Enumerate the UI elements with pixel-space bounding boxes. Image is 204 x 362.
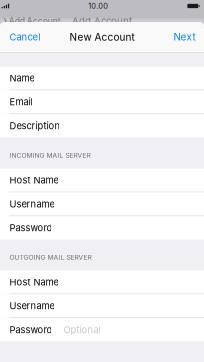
- staticText: Username: [9, 300, 54, 312]
- staticText: Cancel: [9, 31, 40, 43]
- button[interactable]: Username: [0, 192, 204, 216]
- staticText: OUTGOING MAIL SERVER: [9, 253, 91, 261]
- staticText: 10.00: [88, 1, 108, 10]
- staticText: Email: [9, 96, 32, 108]
- staticText: Password: [9, 324, 52, 335]
- staticText: Host Name: [9, 174, 58, 186]
- staticText: New Account: [69, 31, 134, 43]
- button[interactable]: Host Name: [0, 270, 204, 294]
- staticText: Optional: [63, 324, 100, 335]
- button[interactable]: Host Name: [0, 169, 204, 192]
- button[interactable]: Cancel: [0, 22, 49, 52]
- button[interactable]: Password: [0, 318, 204, 341]
- staticText: Description: [9, 120, 60, 131]
- button[interactable]: Email: [0, 90, 204, 113]
- staticText: Name: [9, 72, 34, 84]
- staticText: Password: [9, 222, 52, 233]
- staticText: Add Account: [72, 15, 132, 27]
- staticText: Host Name: [9, 276, 58, 288]
- button[interactable]: Password: [0, 216, 204, 239]
- staticText: INCOMING MAIL SERVER: [9, 151, 90, 159]
- staticText: Username: [9, 198, 54, 210]
- staticText: Add Account: [9, 16, 61, 26]
- button[interactable]: Description: [0, 114, 204, 137]
- button[interactable]: Next: [165, 22, 204, 52]
- button[interactable]: Username: [0, 294, 204, 318]
- staticText: Next: [174, 31, 196, 43]
- button[interactable]: Name: [0, 66, 204, 90]
